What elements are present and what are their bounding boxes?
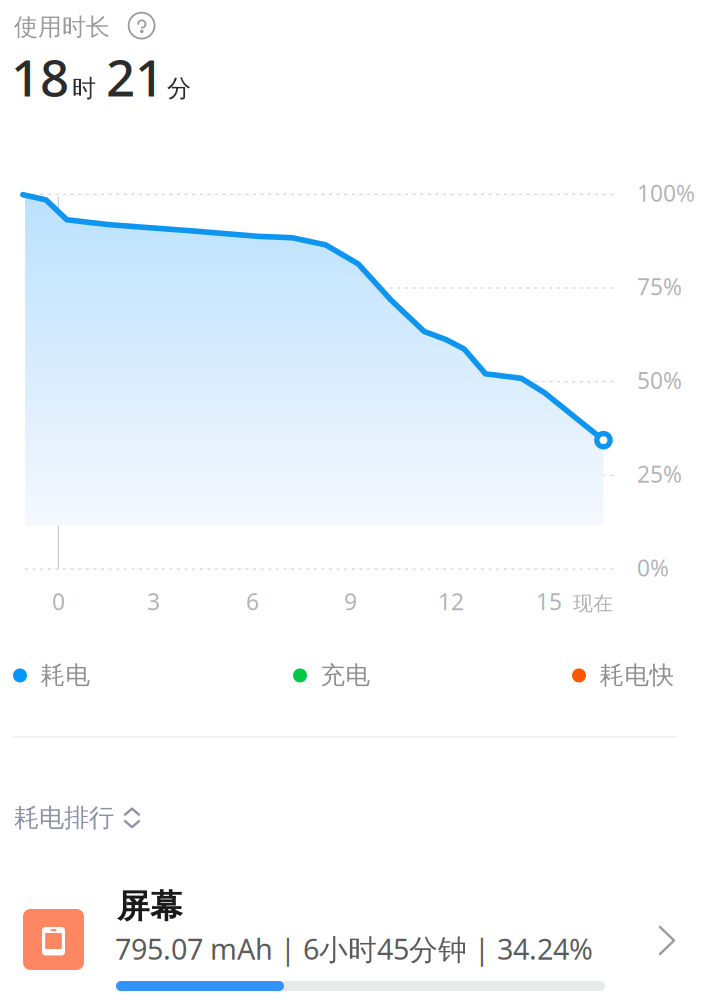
staticText: 15 <box>536 586 562 617</box>
staticText: 18 <box>11 42 69 111</box>
staticText: 耗电快 <box>599 660 674 691</box>
staticText: 3 <box>147 586 160 617</box>
staticText: 屏幕 <box>117 886 183 927</box>
staticText: 现在 <box>573 591 613 616</box>
staticText: 0 <box>52 586 65 617</box>
staticText: 耗电排行 <box>14 802 114 834</box>
staticText: 50% <box>637 365 682 396</box>
staticText: 100% <box>637 177 695 208</box>
staticText: 时 <box>72 73 96 104</box>
staticText: 75% <box>637 271 682 302</box>
staticText: 分 <box>167 73 191 104</box>
button[interactable]: 帮助 <box>129 13 155 39</box>
staticText: 795.07 mAh | 6小时45分钟 | 34.24% <box>115 929 593 968</box>
staticText: 12 <box>438 586 464 617</box>
staticText: 21 <box>106 42 164 111</box>
button[interactable]: 屏幕 <box>0 0 705 1000</box>
staticText: 使用时长 <box>14 12 110 42</box>
staticText: 9 <box>344 586 357 617</box>
staticText: 6 <box>246 586 259 617</box>
staticText: 耗电 <box>40 660 90 691</box>
staticText: 0% <box>637 552 669 583</box>
staticText: 充电 <box>320 660 370 691</box>
button[interactable]: 耗电排行 <box>14 802 139 834</box>
staticText: 25% <box>637 458 682 489</box>
